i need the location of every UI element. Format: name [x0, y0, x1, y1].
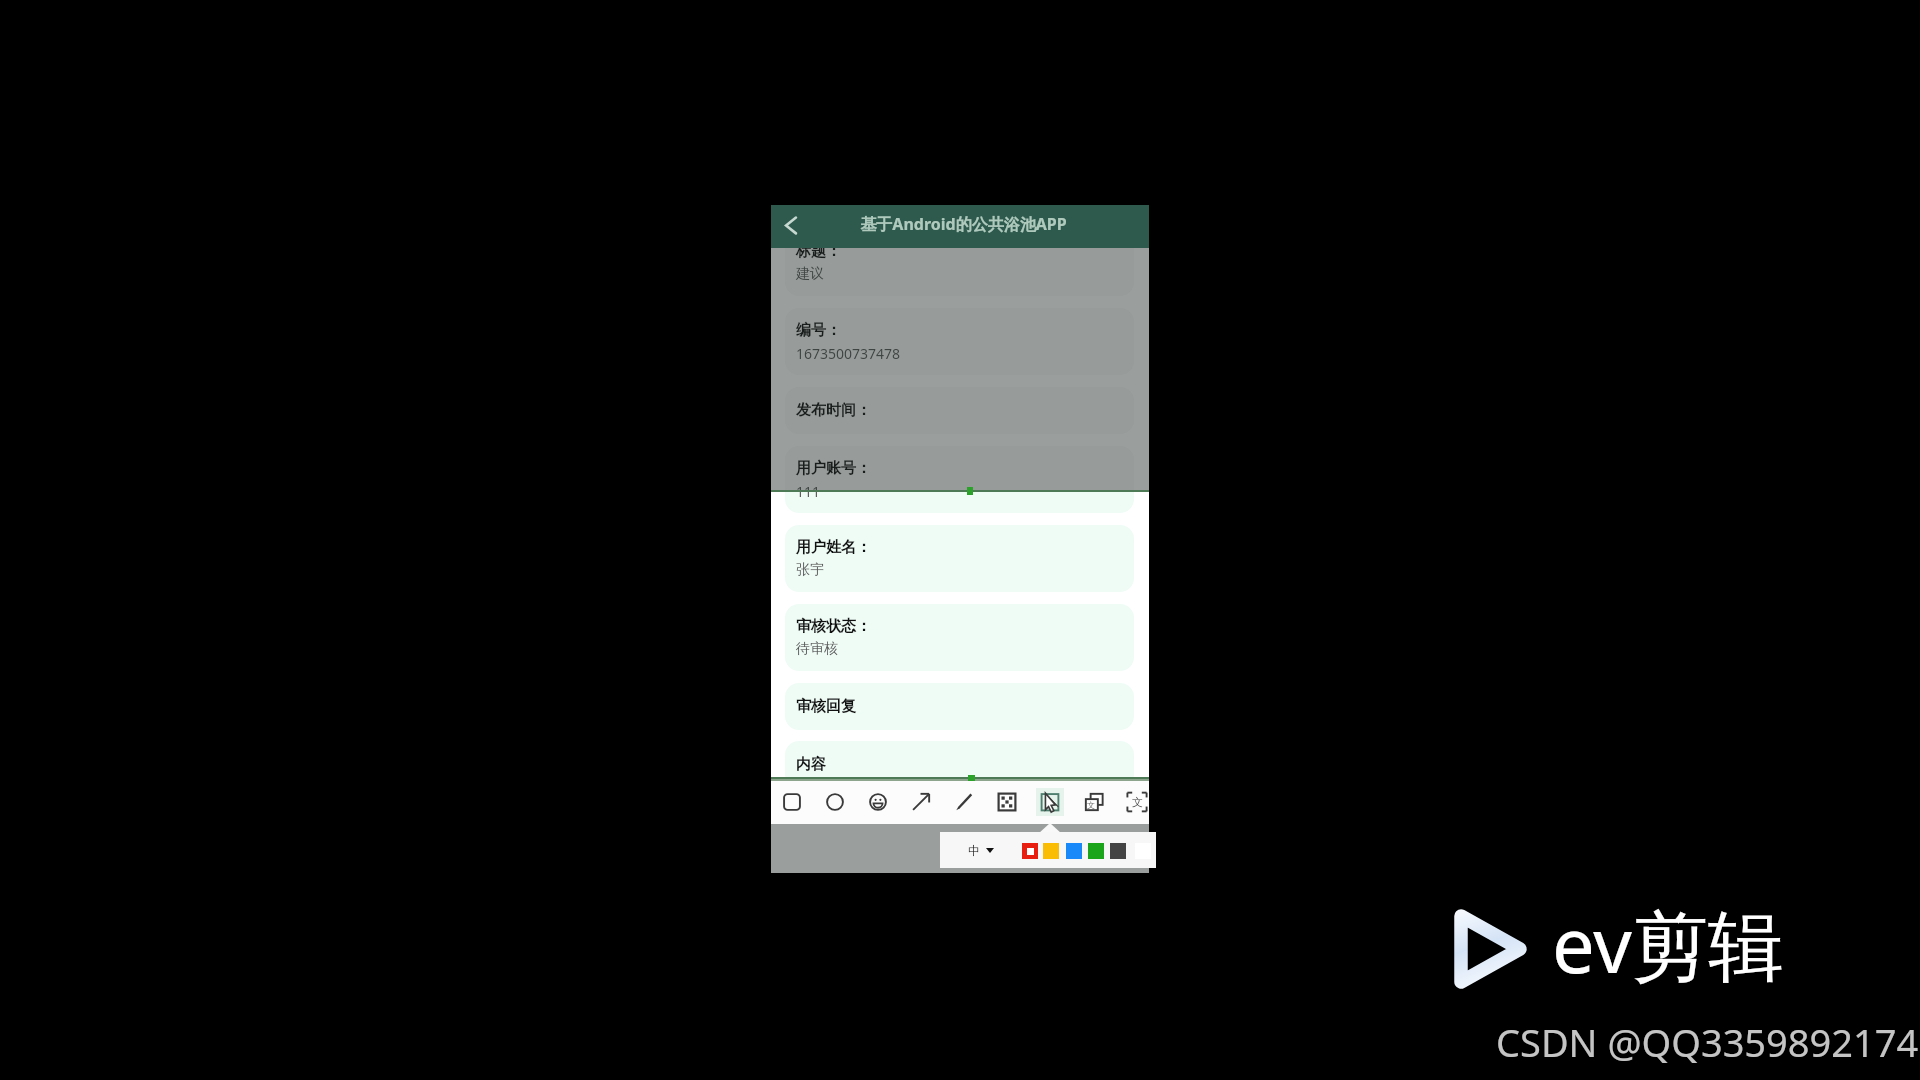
button[interactable]: 审核回复	[785, 683, 1134, 730]
button[interactable]: 用户姓名：	[785, 525, 1134, 592]
button[interactable]: Color 0	[1022, 843, 1038, 859]
button[interactable]: Mosaic	[991, 786, 1023, 818]
button[interactable]: 中	[968, 832, 1184, 868]
button[interactable]: 用户账号：	[785, 446, 1134, 491]
staticText: 111	[796, 482, 821, 491]
button[interactable]: Sticker	[862, 786, 894, 818]
staticText: 发布时间：	[796, 401, 871, 420]
staticText: 编号：	[796, 321, 841, 340]
staticText: 发布时间：	[796, 401, 871, 420]
staticText: ev剪辑	[1552, 892, 1784, 996]
button[interactable]: 用户账号：	[785, 446, 1134, 513]
button[interactable]: 审核状态：	[785, 604, 1134, 671]
staticText: 标题：	[796, 242, 841, 261]
staticText: CSDN @QQ3359892174	[1496, 1016, 1919, 1068]
button[interactable]: Arrow	[905, 786, 937, 818]
staticText: 1673500737478	[796, 344, 901, 363]
staticText: 内容	[796, 755, 826, 774]
button[interactable]: Rectangle	[776, 786, 808, 818]
button[interactable]: Text recognition	[1078, 786, 1110, 818]
button[interactable]: Pen	[948, 786, 980, 818]
staticText: 用户姓名：	[796, 538, 871, 557]
staticText: 用户账号：	[796, 459, 871, 478]
staticText: 文	[1132, 795, 1143, 809]
staticText: 1673500737478	[796, 344, 901, 363]
staticText: 用户账号：	[796, 459, 871, 478]
staticText: 审核回复	[796, 697, 856, 716]
button[interactable]: Ellipse	[819, 786, 851, 818]
staticText: 中	[968, 843, 980, 858]
button[interactable]: 内容	[785, 741, 1134, 788]
button[interactable]: 编号：	[785, 308, 1134, 375]
button[interactable]: 发布时间：	[785, 387, 1134, 434]
staticText: 111	[796, 482, 821, 501]
staticText: 标题：	[796, 242, 841, 261]
button[interactable]: 编号：	[785, 308, 1134, 375]
button[interactable]: 标题：	[785, 229, 1134, 296]
staticText: 建议	[796, 265, 824, 283]
staticText: 编号：	[796, 321, 841, 340]
button[interactable]: 标题：	[785, 229, 1134, 296]
staticText: 待审核	[796, 640, 838, 658]
button[interactable]: Extract text	[1121, 786, 1153, 818]
staticText: 审核状态：	[796, 617, 871, 636]
staticText: 基于Android的公共浴池APP	[796, 213, 1131, 235]
button[interactable]: 发布时间：	[785, 387, 1134, 434]
button[interactable]: Select	[1034, 786, 1066, 818]
staticText: 建议	[796, 265, 824, 283]
staticText: 张宇	[796, 561, 824, 579]
staticText: 文	[1087, 800, 1095, 810]
button[interactable]: Back	[771, 205, 814, 248]
